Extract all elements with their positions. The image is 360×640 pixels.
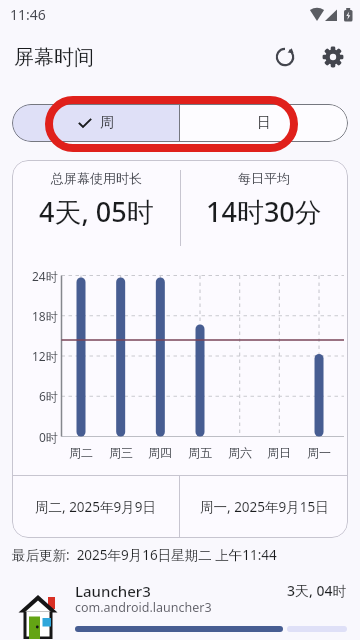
button[interactable] [265, 37, 305, 77]
staticText: 周 [100, 114, 114, 132]
staticText: 周日 [267, 445, 291, 460]
staticText: 周二, 2025年9月9日 [35, 498, 156, 516]
button[interactable]: 周 [12, 104, 179, 142]
staticText: 周一 [307, 445, 331, 460]
staticText: 最后更新: 2025年9月16日星期二 上午11:44 [12, 546, 277, 564]
staticText: com.android.launcher3 [75, 599, 212, 616]
staticText: 周一, 2025年9月15日 [200, 498, 329, 516]
staticText: 周五 [188, 445, 212, 460]
staticText: 18时 [32, 308, 58, 324]
button[interactable]: 日 [180, 104, 348, 142]
button[interactable] [313, 37, 353, 77]
staticText: 总屏幕使用时长 [51, 170, 142, 186]
staticText: 24时 [32, 268, 58, 284]
staticText: 周六 [228, 445, 252, 460]
staticText: 周三 [109, 445, 133, 460]
staticText: 0时 [39, 429, 58, 445]
staticText: 每日平均 [238, 170, 290, 186]
staticText: 周二 [69, 445, 93, 460]
staticText: 屏幕时间 [14, 45, 94, 70]
staticText: 周四 [148, 445, 172, 460]
staticText: 14时30分 [206, 193, 322, 230]
staticText: 3天, 04时 [287, 581, 347, 600]
button[interactable]: Launcher3 [0, 570, 360, 638]
staticText: 日 [257, 114, 271, 132]
staticText: 4天, 05时 [39, 193, 154, 230]
staticText: Launcher3 [75, 581, 151, 601]
staticText: 11:46 [10, 5, 46, 24]
staticText: 6时 [39, 388, 58, 404]
staticText: 12时 [32, 348, 58, 364]
